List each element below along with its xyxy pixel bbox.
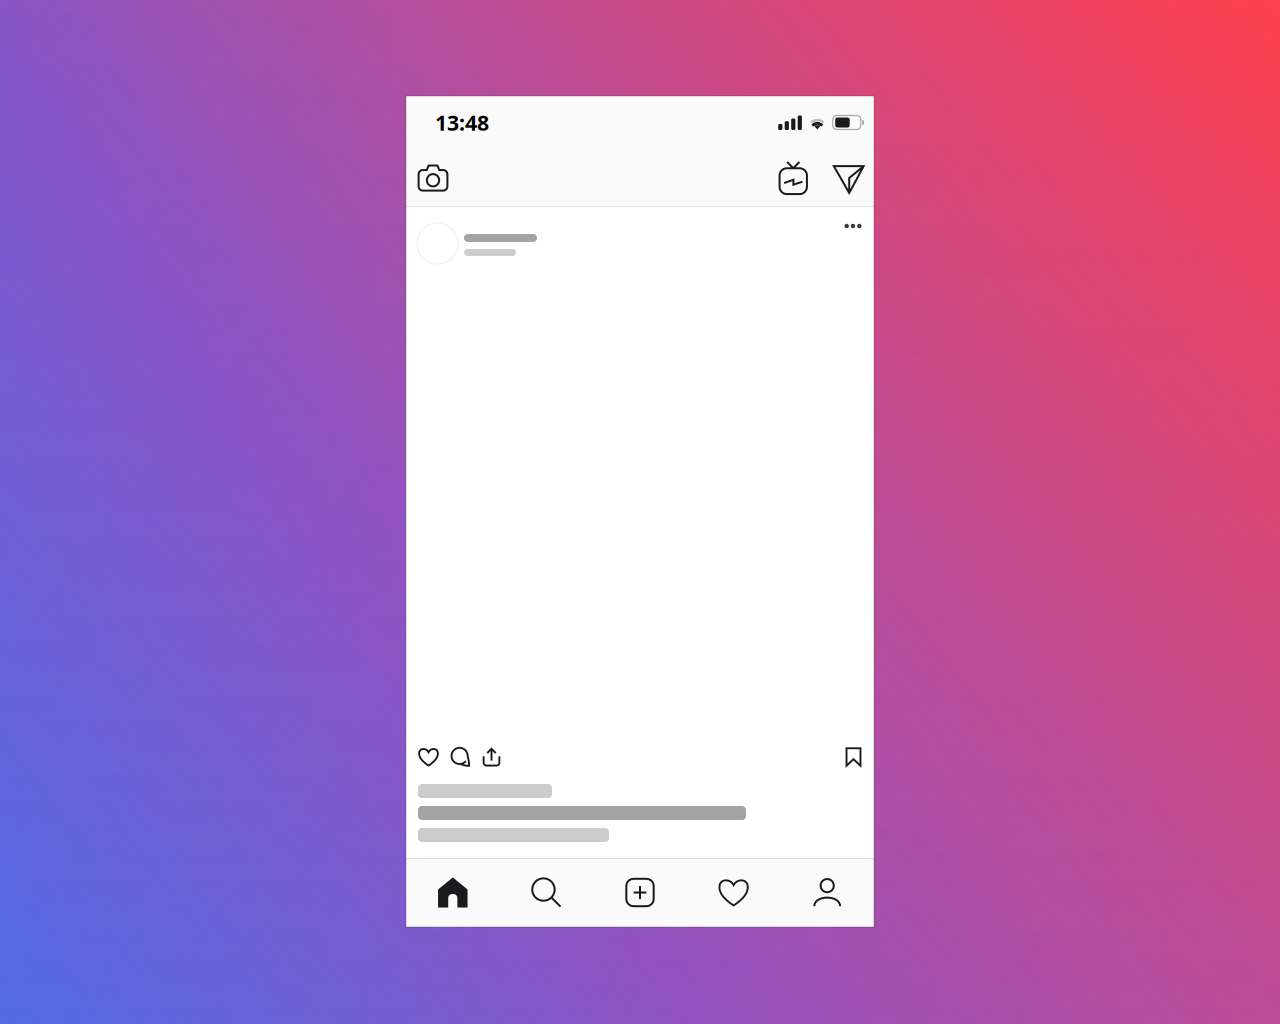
button[interactable]: Like — [412, 737, 445, 777]
button[interactable]: Share — [476, 737, 507, 777]
button[interactable]: Home — [406, 858, 500, 926]
button[interactable]: More options — [836, 208, 870, 244]
button[interactable]: Direct messages — [823, 153, 864, 203]
button[interactable]: IGTV — [779, 153, 823, 203]
button[interactable]: Search — [500, 858, 593, 926]
button[interactable]: Profile — [780, 858, 874, 926]
button[interactable]: Activity — [687, 858, 780, 926]
button[interactable]: Camera — [418, 153, 462, 203]
button[interactable]: Save — [837, 737, 870, 777]
button[interactable]: Comment — [445, 737, 476, 777]
staticText: 13:48 — [435, 108, 489, 137]
button[interactable]: New post — [593, 858, 687, 926]
